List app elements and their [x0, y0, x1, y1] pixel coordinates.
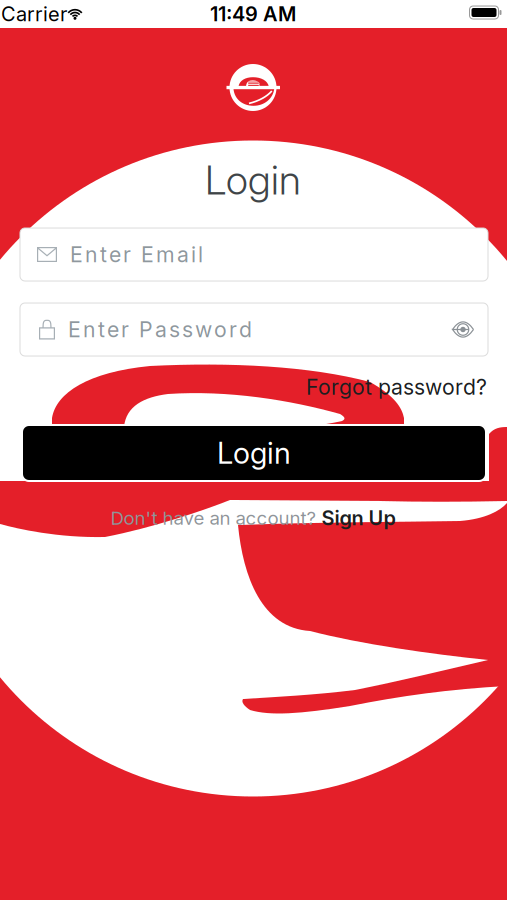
button[interactable]: Sign Up — [321, 506, 395, 530]
button[interactable]: E n t e r P a s s w o r d — [20, 303, 488, 356]
button[interactable]: Show password — [452, 321, 474, 337]
staticText: E n t e r P a s s w o r d — [68, 317, 252, 342]
staticText: 11:49 AM — [210, 2, 296, 26]
staticText: Sign Up — [321, 506, 395, 530]
staticText: E n t e r E m a i l — [70, 242, 203, 267]
button[interactable]: E n t e r E m a i l — [20, 228, 488, 281]
staticText: Login — [205, 156, 301, 204]
staticText: Carrier — [1, 2, 67, 26]
staticText: Don't have an account? — [110, 507, 316, 529]
staticText: Forgot password? — [306, 374, 487, 400]
button[interactable]: Forgot password? — [306, 374, 487, 400]
staticText: Login — [217, 436, 291, 470]
button[interactable]: Login — [22, 425, 486, 481]
